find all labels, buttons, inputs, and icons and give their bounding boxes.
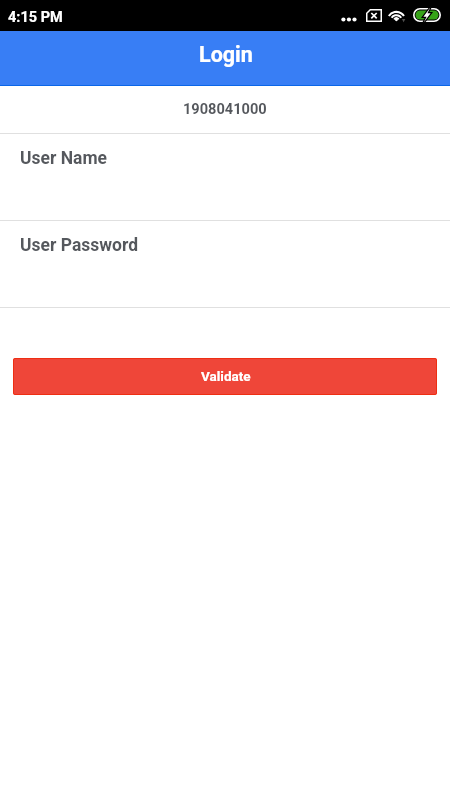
other: More options xyxy=(339,14,359,25)
button[interactable]: User Password xyxy=(0,221,450,307)
button[interactable]: 1908041000 xyxy=(0,86,450,133)
staticText: 4:15 PM xyxy=(8,9,63,26)
staticText: Login xyxy=(199,42,253,67)
staticText: 1908041000 xyxy=(183,100,267,117)
other: No SIM card xyxy=(366,9,382,22)
other: Battery charging xyxy=(413,8,441,22)
button[interactable]: Validate xyxy=(13,358,437,395)
staticText: User Password xyxy=(20,235,139,256)
other: Wi-Fi xyxy=(387,8,406,22)
staticText: User Name xyxy=(20,148,108,169)
button[interactable]: User Name xyxy=(0,134,450,220)
staticText: Validate xyxy=(201,368,251,384)
